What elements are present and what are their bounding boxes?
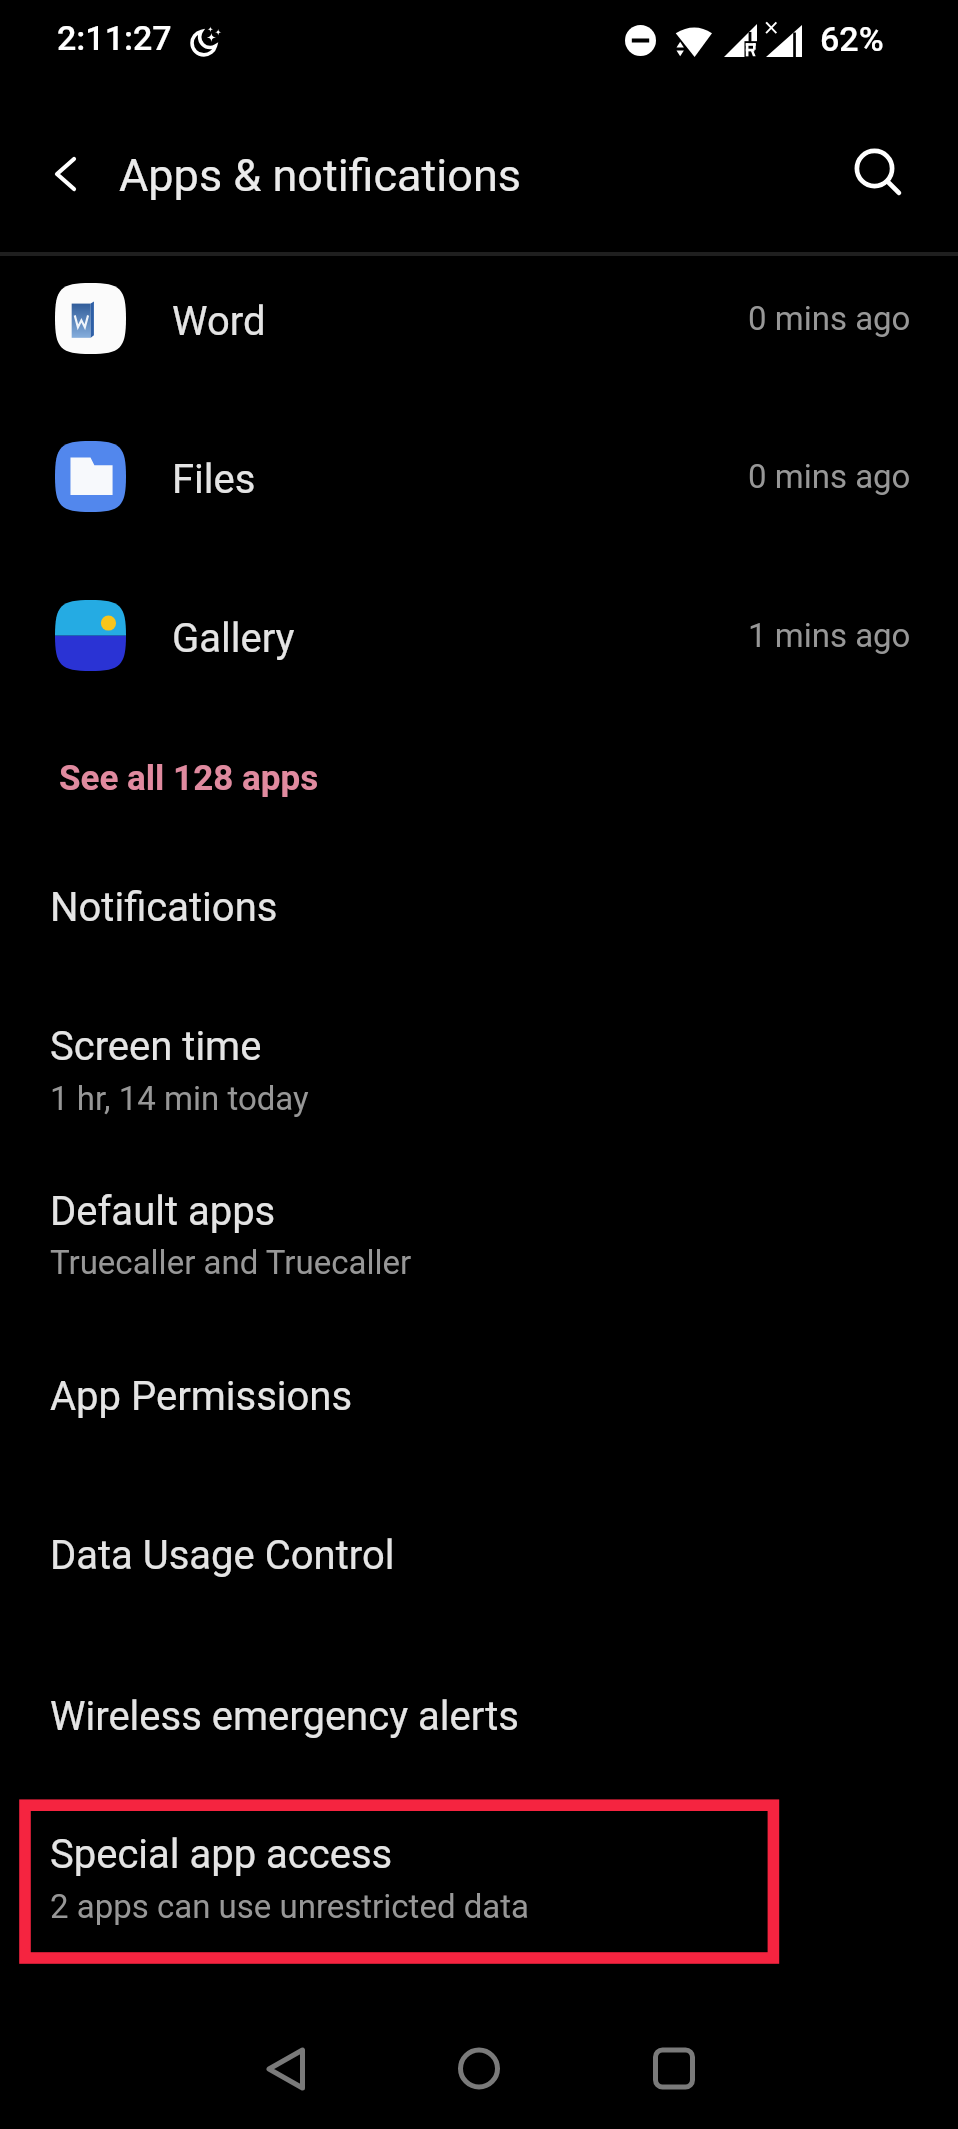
staticText: Word bbox=[172, 298, 266, 345]
button[interactable]: Special app access bbox=[0, 1793, 958, 1943]
button[interactable]: Default apps bbox=[0, 1150, 958, 1300]
staticText: 1 mins ago bbox=[748, 616, 911, 655]
button[interactable]: Gallery bbox=[0, 556, 958, 714]
button[interactable]: Word bbox=[0, 239, 958, 397]
staticText: 1 hr, 14 min today bbox=[50, 1079, 309, 1118]
staticText: App Permissions bbox=[50, 1373, 353, 1420]
staticText: See all 128 apps bbox=[59, 758, 319, 799]
staticText: 0 mins ago bbox=[748, 457, 911, 496]
button[interactable]: See all 128 apps bbox=[31, 746, 347, 811]
staticText: Wireless emergency alerts bbox=[50, 1693, 519, 1740]
button[interactable]: Search bbox=[838, 136, 908, 206]
staticText: Files bbox=[172, 456, 256, 503]
staticText: 2:11:27 bbox=[57, 18, 172, 58]
staticText: Data Usage Control bbox=[50, 1532, 395, 1579]
staticText: Special app access bbox=[50, 1831, 393, 1878]
staticText: Notifications bbox=[50, 884, 278, 931]
staticText: 2 apps can use unrestricted data bbox=[50, 1887, 529, 1926]
button[interactable]: Recent apps bbox=[624, 2018, 724, 2118]
button[interactable]: Home bbox=[429, 2018, 529, 2118]
button[interactable]: Back bbox=[32, 146, 88, 202]
button[interactable]: Data Usage Control bbox=[0, 1494, 958, 1624]
staticText: Truecaller and Truecaller bbox=[50, 1243, 412, 1282]
staticText: Default apps bbox=[50, 1188, 276, 1235]
button[interactable]: Files bbox=[0, 397, 958, 555]
staticText: Screen time bbox=[50, 1023, 262, 1070]
staticText: 0 mins ago bbox=[748, 299, 911, 338]
staticText: Apps & notifications bbox=[119, 149, 521, 202]
button[interactable]: Wireless emergency alerts bbox=[0, 1655, 958, 1785]
button[interactable]: App Permissions bbox=[0, 1335, 958, 1465]
staticText: Gallery bbox=[172, 615, 295, 662]
button[interactable]: Screen time bbox=[0, 985, 958, 1135]
button[interactable]: Back bbox=[236, 2018, 336, 2118]
button[interactable]: Notifications bbox=[0, 845, 958, 975]
staticText: 62% bbox=[820, 19, 884, 59]
